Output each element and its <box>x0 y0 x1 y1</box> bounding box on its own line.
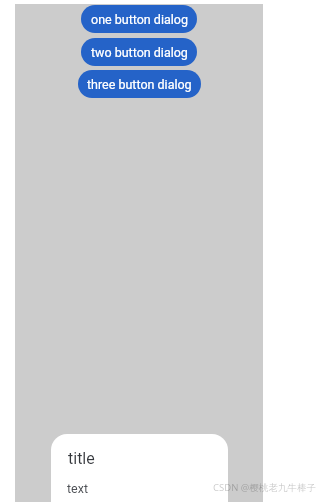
staticText: three button dialog <box>87 77 192 92</box>
staticText: two button dialog <box>91 45 188 60</box>
button[interactable]: two button dialog <box>81 38 197 66</box>
button[interactable]: three button dialog <box>78 70 201 98</box>
staticText: one button dialog <box>91 12 188 27</box>
staticText: title <box>68 449 95 468</box>
staticText: CSDN @樱桃老九牛棒子 <box>213 481 316 494</box>
staticText: text <box>67 481 89 496</box>
button[interactable]: one button dialog <box>81 5 197 33</box>
